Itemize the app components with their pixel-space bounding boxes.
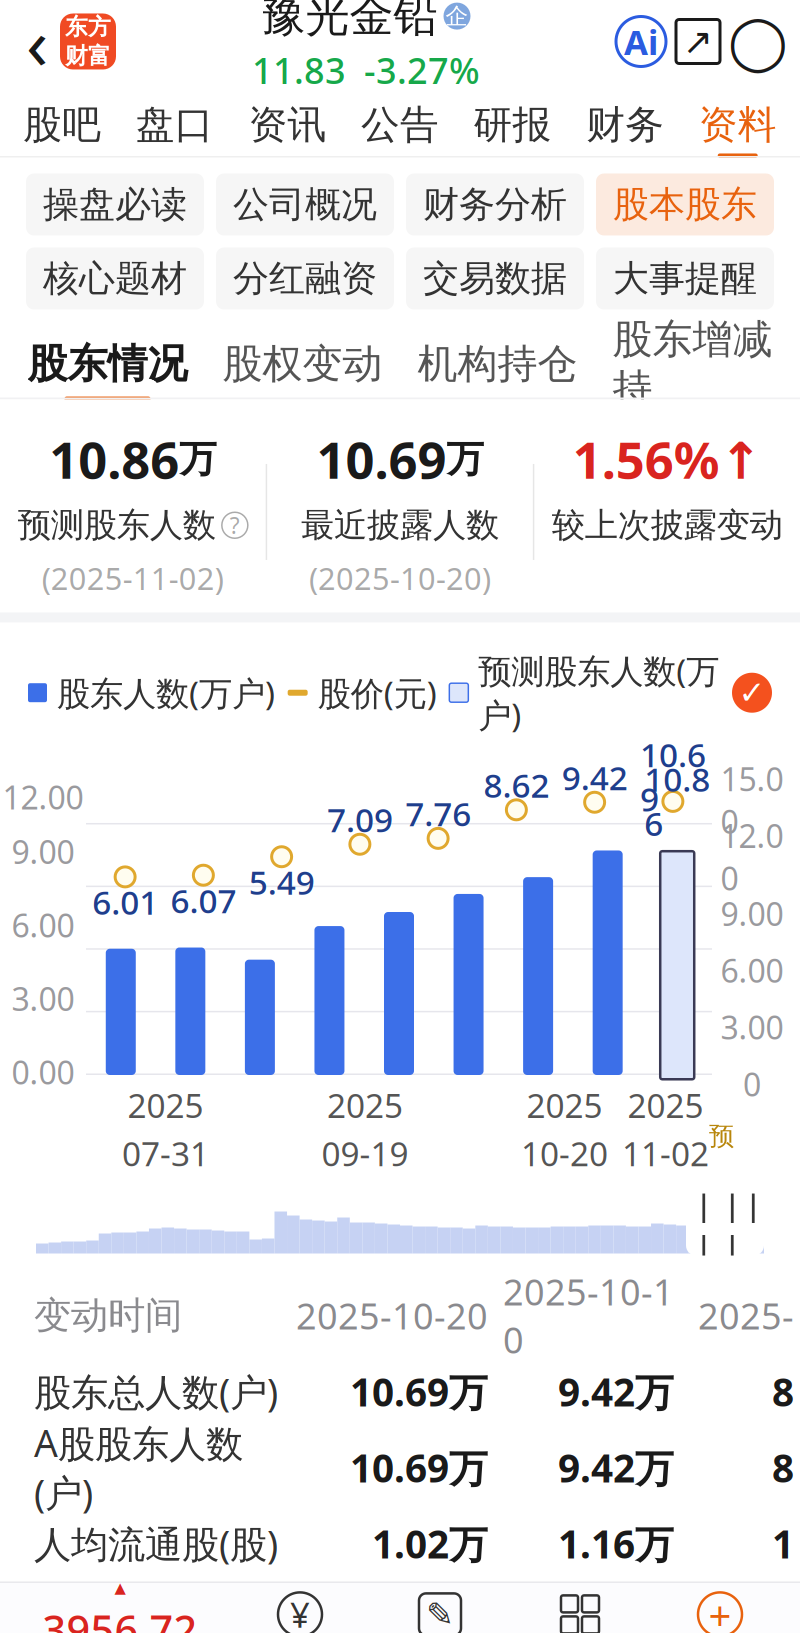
staticText: 机构持仓 (417, 339, 577, 388)
staticText: 2025 (127, 1083, 203, 1127)
staticText: 0 (743, 1063, 761, 1105)
staticText: 11-02 (622, 1131, 709, 1175)
button[interactable]: 搜索 (730, 6, 786, 76)
staticText: 3956.72 (42, 1602, 197, 1633)
staticText: 10-20 (521, 1131, 608, 1175)
button[interactable]: 操盘必读 (26, 173, 204, 235)
staticText: 2025 (526, 1083, 602, 1127)
staticText: 核心题材 (43, 256, 187, 301)
button[interactable]: 公告 (344, 83, 456, 157)
staticText: 公告 (361, 101, 439, 148)
staticText: 12.00 (720, 814, 783, 899)
staticText: 10.69 (316, 425, 446, 493)
button[interactable]: ▴ (10, 1584, 230, 1633)
staticText: 股东总人数(户) (34, 1367, 278, 1416)
staticText: 09-19 (321, 1131, 408, 1175)
staticText: 最近披露人数 (301, 505, 499, 546)
button[interactable]: 股东增减持 (595, 327, 790, 397)
staticText: 9.00 (720, 892, 783, 935)
staticText: 万 (179, 436, 216, 482)
button[interactable]: 返回 (14, 3, 60, 79)
staticText: 交易数据 (423, 256, 567, 301)
staticText: 8 (772, 1366, 794, 1417)
staticText: 2025-10-10 (503, 1268, 674, 1363)
button[interactable]: 机构持仓 (400, 327, 595, 397)
button[interactable]: 研报 (456, 83, 569, 157)
staticText: 东方 (65, 13, 111, 41)
button[interactable]: 盘口 (119, 83, 231, 157)
button[interactable]: 分享 (666, 6, 730, 76)
staticText: 预 (709, 1121, 734, 1152)
staticText: 6.07 (170, 878, 236, 922)
button[interactable]: 股权变动 (205, 327, 400, 397)
staticText: ✎ (426, 1595, 454, 1633)
staticText: 07-31 (122, 1131, 209, 1175)
staticText: 分红融资 (233, 256, 377, 301)
button[interactable]: 切换图例 (732, 673, 772, 713)
staticText: 万 (446, 436, 483, 482)
staticText: 2025- (698, 1292, 794, 1339)
staticText: 股价(元) (318, 671, 437, 715)
staticText: -3.27% (364, 46, 480, 94)
button[interactable]: AI 助手 (616, 16, 666, 66)
staticText: 1.16万 (558, 1518, 674, 1569)
staticText: 3.00 (11, 977, 74, 1020)
staticText: || (693, 1175, 714, 1274)
staticText: 资讯 (248, 101, 326, 148)
staticText: ||| (722, 1175, 764, 1274)
staticText: 豫光金铅 (261, 0, 437, 43)
staticText: 15.00 (720, 757, 783, 842)
staticText: (2025-10-20) (309, 558, 491, 598)
button[interactable]: ✎ (370, 1584, 510, 1633)
staticText: (2025-11-02) (42, 558, 224, 598)
button[interactable]: 财务分析 (406, 173, 584, 235)
staticText: 2025-10-20 (296, 1292, 488, 1339)
staticText: 股东情况 (27, 339, 187, 388)
button[interactable]: 股吧 (6, 83, 119, 157)
staticText: 财富 (65, 42, 111, 70)
staticText: 操盘必读 (43, 182, 187, 227)
staticText: ¥ (290, 1591, 310, 1633)
staticText: 大事提醒 (613, 256, 757, 301)
button[interactable]: 功能 (510, 1584, 650, 1633)
button[interactable]: 交易数据 (406, 247, 584, 309)
staticText: + (708, 1588, 731, 1633)
staticText: 股吧 (23, 101, 101, 148)
staticText: ◯ (728, 11, 788, 72)
staticText: 公司概况 (233, 182, 377, 227)
button[interactable]: 股东情况 (10, 327, 205, 397)
staticText: 股东增减持 (612, 315, 772, 413)
staticText: 9.00 (11, 830, 74, 873)
button[interactable]: 资料 (681, 83, 794, 157)
staticText: 1.56%↑ (573, 425, 762, 493)
button[interactable]: 财务 (569, 83, 681, 157)
staticText: ✓ (738, 675, 765, 711)
staticText: 10.86 (49, 425, 179, 493)
staticText: 较上次披露变动 (552, 505, 783, 546)
button[interactable]: 公司概况 (216, 173, 394, 235)
staticText: ? (230, 510, 240, 540)
button[interactable]: 大事提醒 (596, 247, 774, 309)
staticText: 10.69万 (350, 1366, 488, 1417)
staticText: 股东人数(万户) (57, 671, 275, 715)
button[interactable]: 核心题材 (26, 247, 204, 309)
staticText: 1 (772, 1518, 794, 1569)
staticText: 财务分析 (423, 182, 567, 227)
staticText: 10.69万 (350, 1442, 488, 1493)
button[interactable]: 资讯 (231, 83, 344, 157)
staticText: 11.83 (252, 46, 346, 94)
button[interactable]: + (650, 1584, 790, 1633)
staticText: 变动时间 (34, 1293, 182, 1338)
button[interactable]: 调整区间 (686, 1193, 764, 1255)
staticText: 9.42万 (558, 1442, 674, 1493)
staticText: 10.86 (644, 757, 710, 845)
button[interactable]: 东方财富 (60, 13, 116, 69)
staticText: 0.00 (11, 1051, 74, 1093)
staticText: 研报 (474, 101, 552, 148)
button[interactable]: 股本股东 (596, 173, 774, 235)
staticText: ↗ (683, 21, 713, 62)
button[interactable]: 分红融资 (216, 247, 394, 309)
button[interactable]: ¥ (230, 1584, 370, 1633)
staticText: 9.42 (562, 755, 628, 799)
